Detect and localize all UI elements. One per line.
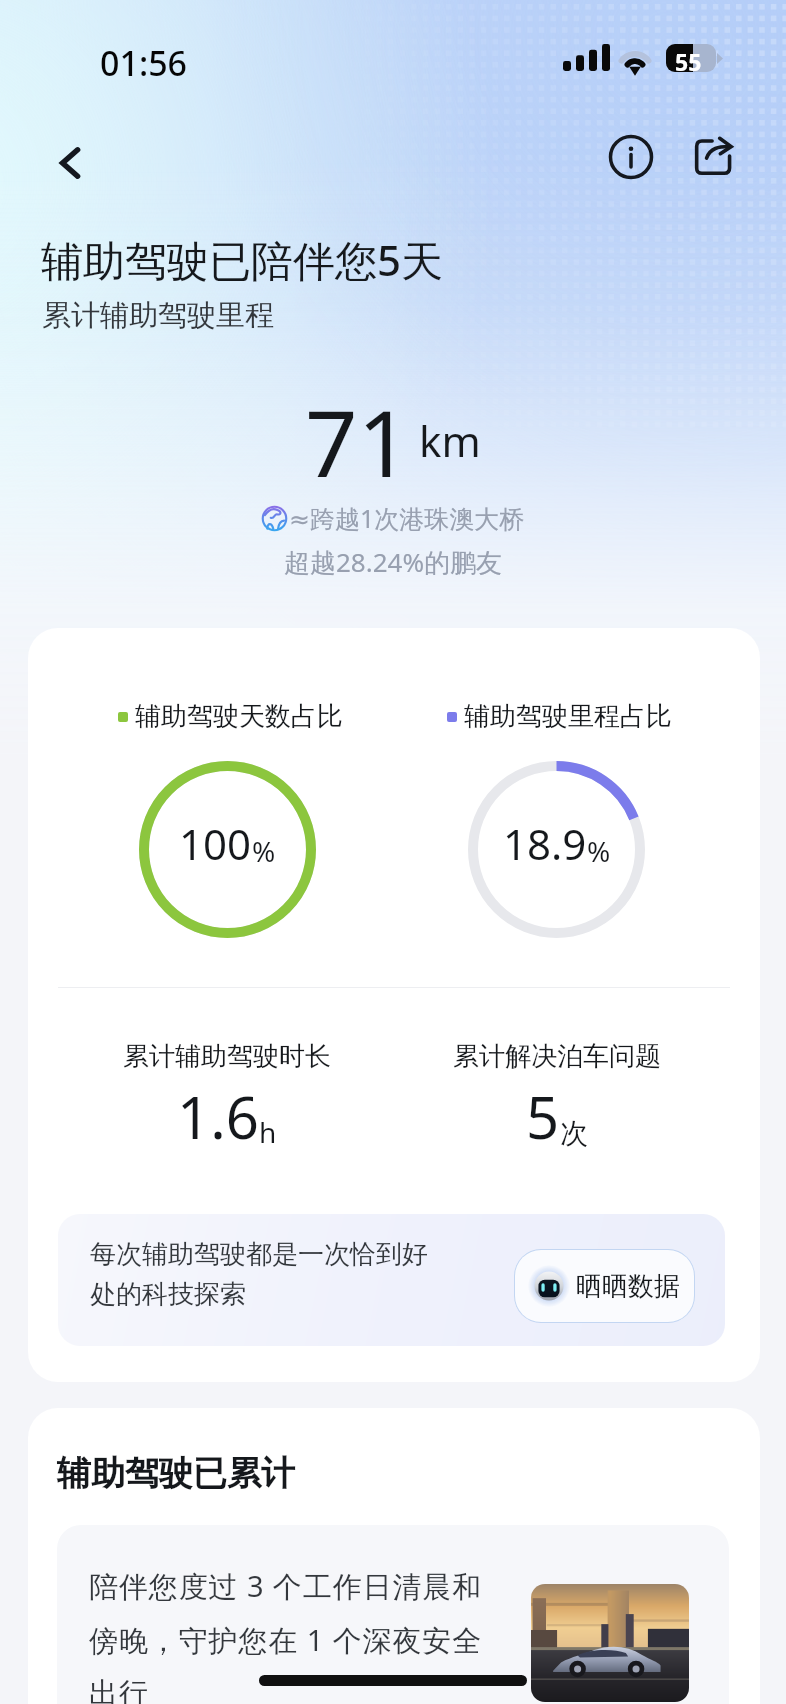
staticText: 01:56 xyxy=(100,40,188,86)
staticText: h xyxy=(259,1113,277,1151)
staticText: 100 xyxy=(179,815,252,872)
staticText: 71 xyxy=(305,379,411,504)
staticText: 55 xyxy=(675,46,702,74)
button[interactable]: Share xyxy=(681,124,745,188)
staticText: 累计辅助驾驶时长 xyxy=(123,1040,331,1073)
staticText: 辅助驾驶天数占比 xyxy=(135,700,343,733)
staticText: 辅助驾驶已累计 xyxy=(57,1452,295,1495)
button[interactable]: Back xyxy=(40,132,102,194)
staticText: km xyxy=(419,412,481,469)
staticText: 5 xyxy=(526,1077,560,1156)
staticText: 18.9 xyxy=(503,815,587,872)
staticText: 次 xyxy=(560,1116,588,1151)
button[interactable]: 晒晒数据 xyxy=(515,1250,694,1322)
staticText: 累计辅助驾驶里程 xyxy=(42,297,274,334)
staticText: 辅助驾驶已陪伴您5天 xyxy=(41,231,444,288)
staticText: 晒晒数据 xyxy=(576,1270,680,1303)
staticText: 1.6 xyxy=(177,1077,259,1156)
staticText: 陪伴您度过 3 个工作日清晨和傍晚，守护您在 1 个深夜安全出行 xyxy=(89,1566,489,1704)
staticText: 超越28.24%的鹏友 xyxy=(0,544,786,580)
button[interactable]: Info xyxy=(599,125,663,189)
staticText: 每次辅助驾驶都是一次恰到好处的科技探索 xyxy=(90,1238,435,1311)
staticText: % xyxy=(587,832,611,870)
staticText: % xyxy=(252,832,276,870)
staticText: ≈跨越1次港珠澳大桥 xyxy=(289,501,525,535)
staticText: 辅助驾驶里程占比 xyxy=(464,700,672,733)
staticText: 累计解决泊车问题 xyxy=(453,1040,661,1073)
